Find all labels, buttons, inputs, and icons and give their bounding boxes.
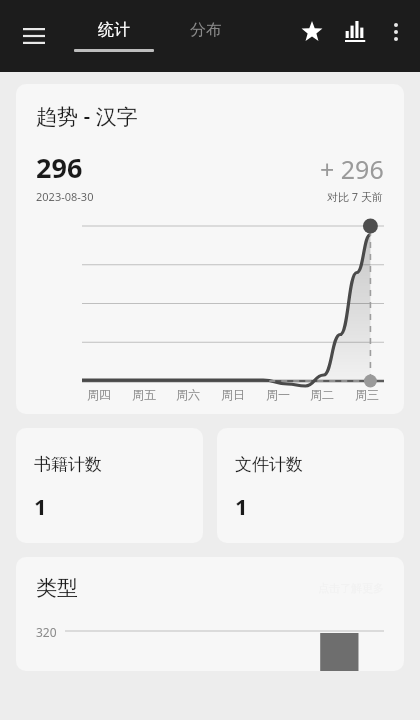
staticText: 1 — [235, 491, 248, 521]
staticText: 类型 — [36, 575, 78, 601]
staticText: 周四 — [82, 387, 116, 402]
button[interactable]: 类型 — [16, 557, 404, 671]
staticText: 文件计数 — [235, 454, 303, 475]
button[interactable]: 趋势 - 汉字 — [16, 84, 404, 414]
staticText: 1 — [34, 491, 47, 521]
staticText: 书籍计数 — [34, 454, 102, 475]
staticText: 统计 — [98, 20, 130, 40]
button[interactable]: 统计 — [62, 16, 166, 56]
staticText: 周一 — [261, 387, 295, 402]
staticText: 对比 7 天前 — [327, 189, 384, 204]
staticText: 分布 — [190, 20, 222, 40]
button[interactable]: Menu — [14, 16, 54, 56]
button[interactable]: 书籍计数 — [16, 428, 203, 543]
staticText: 周二 — [305, 387, 339, 402]
staticText: 周三 — [350, 387, 384, 402]
staticText: 320 — [36, 624, 57, 640]
staticText: 296 — [36, 149, 83, 186]
staticText: 2023-08-30 — [36, 189, 94, 204]
staticText: 周日 — [216, 387, 250, 402]
button[interactable]: Favorite — [290, 10, 334, 54]
button[interactable]: Chart — [334, 10, 378, 54]
staticText: + 296 — [320, 152, 384, 186]
staticText: 周六 — [171, 387, 205, 402]
button[interactable]: More options — [378, 14, 414, 50]
staticText: 趋势 - 汉字 — [36, 102, 138, 131]
button[interactable]: 分布 — [178, 22, 234, 50]
staticText: 周五 — [127, 387, 161, 402]
button[interactable]: 文件计数 — [217, 428, 404, 543]
